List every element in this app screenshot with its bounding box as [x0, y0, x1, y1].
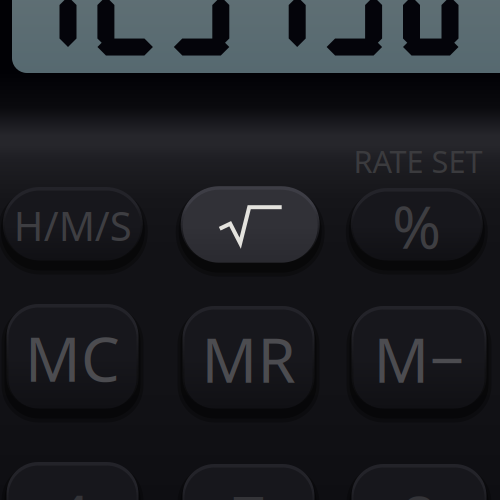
button[interactable]: Square root: [183, 190, 318, 263]
staticText: MC: [25, 317, 120, 399]
staticText: RATE SET: [353, 141, 482, 181]
staticText: H/M/S: [14, 199, 132, 252]
button[interactable]: M−: [353, 309, 484, 408]
staticText: M−: [373, 318, 464, 400]
button[interactable]: MC: [8, 307, 136, 408]
button[interactable]: 4: [8, 465, 136, 500]
button[interactable]: 8: [353, 467, 484, 500]
button[interactable]: MR: [184, 309, 312, 408]
button[interactable]: %: [353, 191, 481, 260]
staticText: 7: [231, 476, 266, 500]
button[interactable]: H/M/S: [5, 190, 141, 260]
staticText: 4: [55, 475, 90, 500]
button[interactable]: 7: [184, 467, 312, 500]
staticText: MR: [201, 318, 295, 400]
staticText: 8: [401, 476, 436, 500]
staticText: %: [392, 187, 441, 265]
